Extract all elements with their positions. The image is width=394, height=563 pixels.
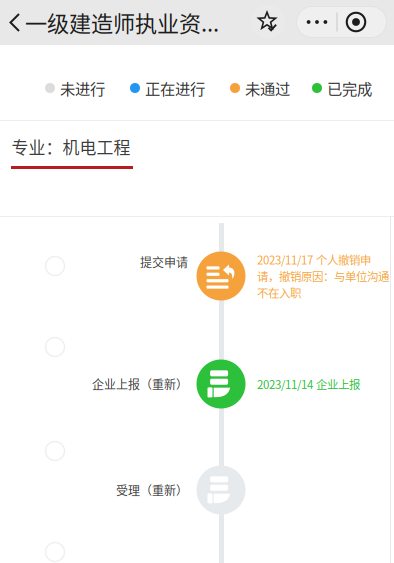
staticText: 2023/11/14 企业上报 xyxy=(257,376,360,392)
button[interactable]: 提交申请 xyxy=(0,236,394,316)
staticText: 企业上报（重新） xyxy=(92,375,188,393)
staticText: 受理（重新） xyxy=(116,481,188,499)
staticText: 一级建造师执业资... xyxy=(25,6,219,38)
button[interactable]: 更多 xyxy=(296,6,386,37)
staticText: 提交申请 xyxy=(140,253,188,271)
button[interactable]: 返回 xyxy=(0,0,30,45)
button[interactable]: 收藏 xyxy=(251,5,285,39)
staticText: 未进行 xyxy=(60,77,105,99)
staticText: 未通过 xyxy=(245,77,290,99)
button[interactable]: 受理（重新） xyxy=(0,450,394,530)
staticText: 专业：机电工程 xyxy=(11,134,130,159)
staticText: 正在进行 xyxy=(145,77,205,99)
staticText: 已完成 xyxy=(327,77,372,99)
button[interactable]: 企业上报（重新） xyxy=(0,344,394,424)
staticText: 2023/11/17 个人撤销申请，撤销原因：与单位沟通不在入职 xyxy=(257,251,389,301)
